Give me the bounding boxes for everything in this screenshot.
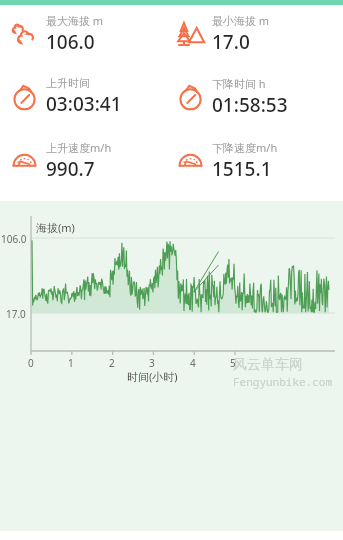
staticText: 下降时间 h — [212, 76, 266, 91]
button[interactable]: 海拔(m) — [0, 201, 343, 531]
staticText: 上升速度m/h — [46, 140, 112, 155]
staticText: 01:58:53 — [212, 92, 288, 118]
staticText: 风云单车网 — [233, 356, 303, 374]
staticText: 时间(小时) — [127, 369, 178, 384]
staticText: 海拔(m) — [36, 220, 75, 235]
staticText: 17.0 — [6, 307, 26, 321]
staticText: 下降速度m/h — [212, 140, 278, 155]
button[interactable]: Speed — [0, 137, 171, 184]
staticText: 最大海拔 m — [46, 13, 104, 28]
other: Max altitude — [9, 18, 40, 49]
staticText: 106.0 — [46, 29, 95, 55]
staticText: 5 — [230, 356, 236, 370]
button[interactable]: Duration — [0, 73, 171, 120]
button[interactable]: Max altitude — [0, 10, 171, 57]
other: Min altitude — [175, 18, 206, 49]
other: Speed — [175, 145, 206, 176]
staticText: 03:03:41 — [46, 91, 122, 117]
staticText: 17.0 — [212, 29, 250, 55]
staticText: 最小海拔 m — [212, 13, 270, 28]
staticText: 2 — [109, 356, 115, 370]
button[interactable]: Speed — [171, 137, 343, 184]
button[interactable]: Duration — [171, 73, 343, 120]
other: Duration — [9, 81, 40, 112]
staticText: 0 — [28, 356, 34, 370]
staticText: Fengyunbike.com — [233, 374, 332, 389]
staticText: 4 — [190, 356, 196, 370]
other: Speed — [9, 145, 40, 176]
other: Duration — [175, 81, 206, 112]
staticText: 1 — [68, 356, 74, 370]
staticText: 上升时间 — [46, 76, 90, 90]
button[interactable]: Min altitude — [171, 10, 343, 57]
staticText: 1515.1 — [212, 156, 272, 182]
staticText: 990.7 — [46, 156, 95, 182]
staticText: 3 — [149, 356, 155, 370]
staticText: 106.0 — [1, 232, 27, 246]
